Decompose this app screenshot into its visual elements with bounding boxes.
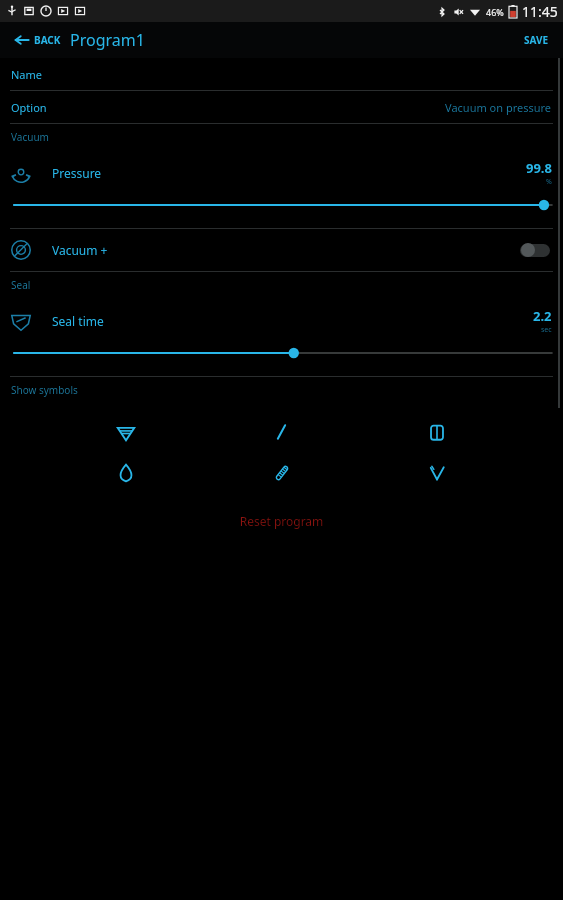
staticText: 11:45 [522,2,558,21]
staticText: Vacuum on pressure [445,100,552,115]
staticText: Pressure [52,165,102,181]
button[interactable]: SAVE [510,25,563,55]
staticText: sec [541,325,552,335]
button[interactable]: Vacuum plus toggle [520,242,552,258]
staticText: Reset program [0,513,563,529]
button[interactable]: Name [0,58,563,90]
button[interactable]: Bag [407,417,467,449]
button[interactable]: Vacuum funnel [96,417,156,449]
staticText: Vacuum [11,130,49,144]
button[interactable]: Brush [252,457,312,489]
staticText: Program1 [70,29,145,51]
button[interactable]: Check [407,457,467,489]
staticText: Show symbols [11,383,78,397]
staticText: Option [11,100,47,115]
staticText: % [546,177,552,187]
button[interactable]: Liquid drop [96,457,156,489]
button[interactable]: Vacuum + [0,229,563,271]
staticText: SAVE [524,33,549,47]
button[interactable]: Reset program [0,507,563,535]
staticText: BACK [34,33,61,47]
button[interactable]: Knife [252,417,312,449]
staticText: 99.8 [526,159,552,177]
staticText: 2.2 [533,307,552,325]
staticText: 46% [486,6,504,18]
button[interactable]: Pressure [0,150,563,196]
button[interactable] [0,196,563,214]
staticText: Vacuum + [52,242,108,258]
staticText: Seal time [52,313,104,329]
staticText: Seal [11,278,31,292]
button[interactable] [0,344,563,362]
staticText: Name [11,67,43,82]
button[interactable]: BACK [0,26,69,54]
button[interactable]: Option [0,91,563,123]
button[interactable]: Seal time [0,298,563,344]
